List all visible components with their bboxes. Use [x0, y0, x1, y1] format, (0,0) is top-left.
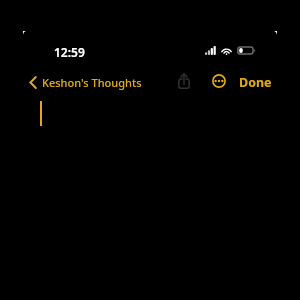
button[interactable]: Back to Keshon's Thoughts [29, 72, 142, 92]
button[interactable]: Share [173, 70, 194, 92]
staticText: 12:59 [54, 44, 85, 60]
button[interactable]: More options [208, 70, 230, 92]
button[interactable]: Done [239, 74, 272, 91]
staticText: Done [239, 74, 272, 91]
staticText: Keshon's Thoughts [42, 75, 142, 90]
